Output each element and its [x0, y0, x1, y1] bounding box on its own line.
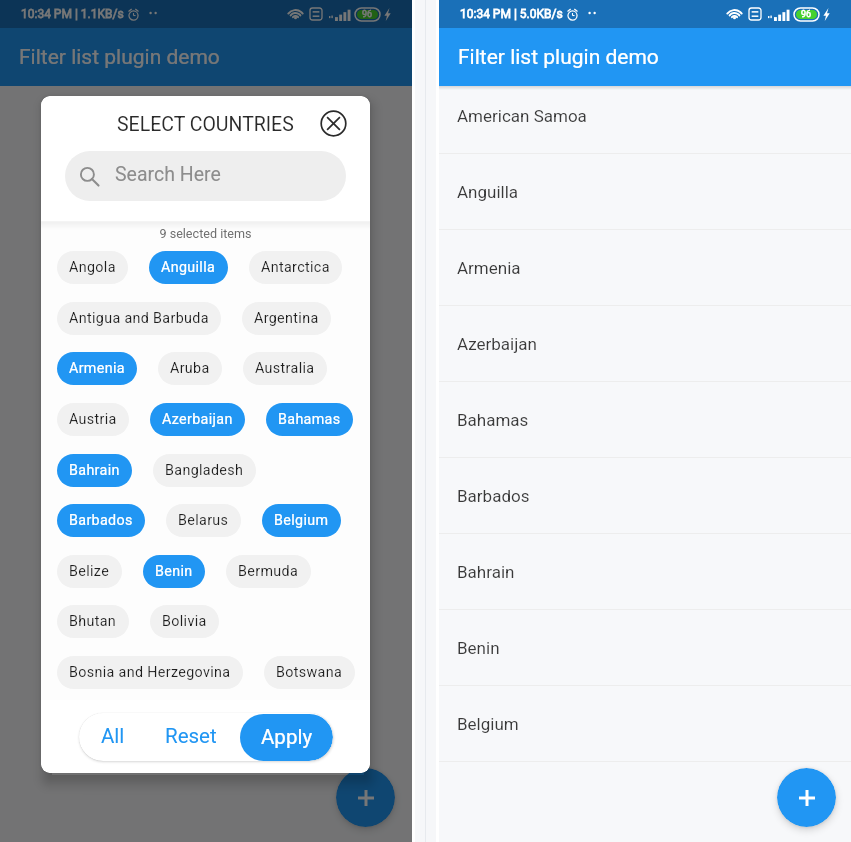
button[interactable]: Armenia — [439, 230, 851, 306]
staticText: SELECT COUNTRIES — [117, 113, 294, 136]
staticText: Belgium — [457, 714, 519, 734]
staticText: Bahrain — [457, 562, 515, 582]
staticText: Reset — [165, 724, 217, 748]
staticText: Botswana — [276, 664, 343, 681]
button[interactable]: Bosnia and Herzegovina — [57, 656, 243, 689]
button[interactable]: Bangladesh — [153, 454, 256, 487]
staticText: Belgium — [274, 512, 329, 529]
staticText: Australia — [255, 360, 315, 377]
button[interactable]: Bolivia — [150, 605, 219, 638]
button[interactable]: Add — [777, 768, 836, 827]
button[interactable]: Argentina — [242, 302, 331, 335]
button[interactable]: Bhutan — [57, 605, 129, 638]
button[interactable]: Australia — [243, 352, 327, 385]
staticText: Filter list plugin demo — [458, 45, 659, 70]
button[interactable]: Antarctica — [249, 251, 342, 284]
button[interactable]: Anguilla — [149, 251, 228, 284]
staticText: Bolivia — [162, 613, 207, 630]
button[interactable]: Barbados — [439, 458, 851, 534]
button[interactable]: Belize — [57, 555, 122, 588]
staticText: 10:34 PM | 1.1KB/s — [21, 7, 124, 21]
staticText: Antigua and Barbuda — [69, 310, 209, 327]
staticText: Bahamas — [457, 410, 529, 430]
button[interactable]: Search Here — [65, 151, 346, 201]
staticText: Benin — [155, 563, 193, 580]
staticText: Armenia — [457, 258, 521, 278]
button[interactable]: Bahamas — [266, 403, 353, 436]
button[interactable]: Belgium — [262, 504, 341, 537]
staticText: Anguilla — [457, 182, 519, 202]
button[interactable]: Antigua and Barbuda — [57, 302, 221, 335]
staticText: Bermuda — [238, 563, 299, 580]
staticText: 96 — [801, 9, 812, 20]
button[interactable]: Botswana — [264, 656, 355, 689]
button[interactable]: Belgium — [439, 686, 851, 762]
staticText: Azerbaijan — [457, 334, 537, 354]
button[interactable]: American Samoa — [439, 78, 851, 154]
button[interactable]: Barbados — [57, 504, 145, 537]
staticText: All — [101, 724, 125, 748]
button[interactable]: Armenia — [57, 352, 137, 385]
staticText: Antarctica — [261, 259, 330, 276]
staticText: Apply — [261, 725, 313, 749]
button[interactable]: Angola — [57, 251, 128, 284]
staticText: Filter list plugin demo — [19, 45, 220, 70]
staticText: 9 selected items — [41, 226, 370, 241]
staticText: Bosnia and Herzegovina — [69, 664, 231, 681]
button[interactable]: Bahrain — [57, 454, 132, 487]
staticText: American Samoa — [457, 106, 587, 126]
staticText: Argentina — [254, 310, 319, 327]
button[interactable]: Austria — [57, 403, 129, 436]
button[interactable]: Aruba — [158, 352, 222, 385]
staticText: Austria — [69, 411, 117, 428]
staticText: Belize — [69, 563, 110, 580]
button[interactable]: Reset — [153, 714, 229, 760]
button[interactable]: Azerbaijan — [439, 306, 851, 382]
staticText: Bhutan — [69, 613, 117, 630]
button[interactable]: Bermuda — [226, 555, 311, 588]
staticText: Bahrain — [69, 462, 120, 479]
staticText: Barbados — [457, 486, 530, 506]
staticText: Azerbaijan — [162, 411, 233, 428]
button[interactable]: Bahamas — [439, 382, 851, 458]
button[interactable]: Bahrain — [439, 534, 851, 610]
staticText: Angola — [69, 259, 116, 276]
button[interactable]: Azerbaijan — [150, 403, 245, 436]
button[interactable]: Apply — [240, 714, 333, 761]
staticText: 10:34 PM | 5.0KB/s — [460, 7, 563, 21]
staticText: Benin — [457, 638, 500, 658]
button[interactable]: Benin — [439, 610, 851, 686]
button[interactable]: Anguilla — [439, 154, 851, 230]
staticText: Bangladesh — [165, 462, 244, 479]
staticText: Bahamas — [278, 411, 341, 428]
staticText: 96 — [362, 9, 373, 20]
staticText: Aruba — [170, 360, 210, 377]
button[interactable]: Benin — [143, 555, 205, 588]
staticText: Belarus — [178, 512, 229, 529]
button[interactable]: All — [89, 714, 137, 760]
staticText: Search Here — [115, 163, 221, 186]
staticText: Armenia — [69, 360, 125, 377]
button[interactable]: Close — [318, 108, 348, 138]
button[interactable]: Add — [336, 768, 395, 827]
staticText: Barbados — [69, 512, 133, 529]
button[interactable]: Belarus — [166, 504, 241, 537]
staticText: Anguilla — [161, 259, 216, 276]
